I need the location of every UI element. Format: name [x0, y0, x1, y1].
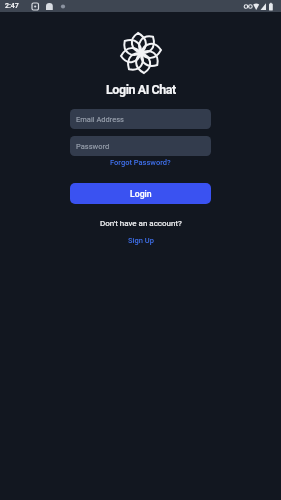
staticText: Login AI Chat	[106, 82, 176, 97]
staticText: Login	[130, 189, 152, 199]
staticText: Forgot Password?	[110, 158, 171, 167]
button[interactable]: Password	[70, 136, 211, 156]
button[interactable]: Forgot Password?	[110, 158, 171, 167]
button[interactable]: Sign Up	[128, 236, 154, 245]
button[interactable]: Email Address	[70, 109, 211, 129]
button[interactable]: Login	[70, 183, 211, 204]
staticText: 2:47	[5, 2, 19, 10]
staticText: Sign Up	[128, 236, 154, 245]
staticText: Don't have an account?	[100, 219, 182, 228]
staticText: Email Address	[76, 115, 124, 124]
staticText: Password	[76, 142, 110, 151]
